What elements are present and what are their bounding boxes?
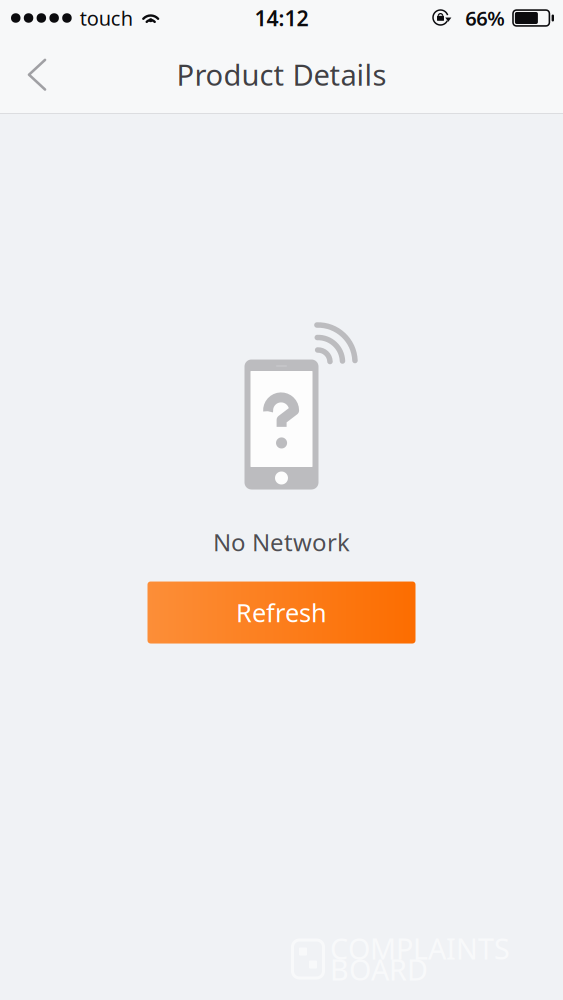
staticText: No Network (213, 526, 350, 558)
button[interactable]: Back (0, 44, 69, 104)
staticText: 14:12 (254, 4, 308, 32)
button[interactable]: Refresh (147, 581, 415, 643)
staticText: Product Details (176, 55, 386, 94)
staticText: Refresh (236, 596, 327, 629)
staticText: 66% (465, 5, 505, 31)
staticText: BOARD (330, 950, 428, 989)
staticText: touch (80, 5, 133, 31)
